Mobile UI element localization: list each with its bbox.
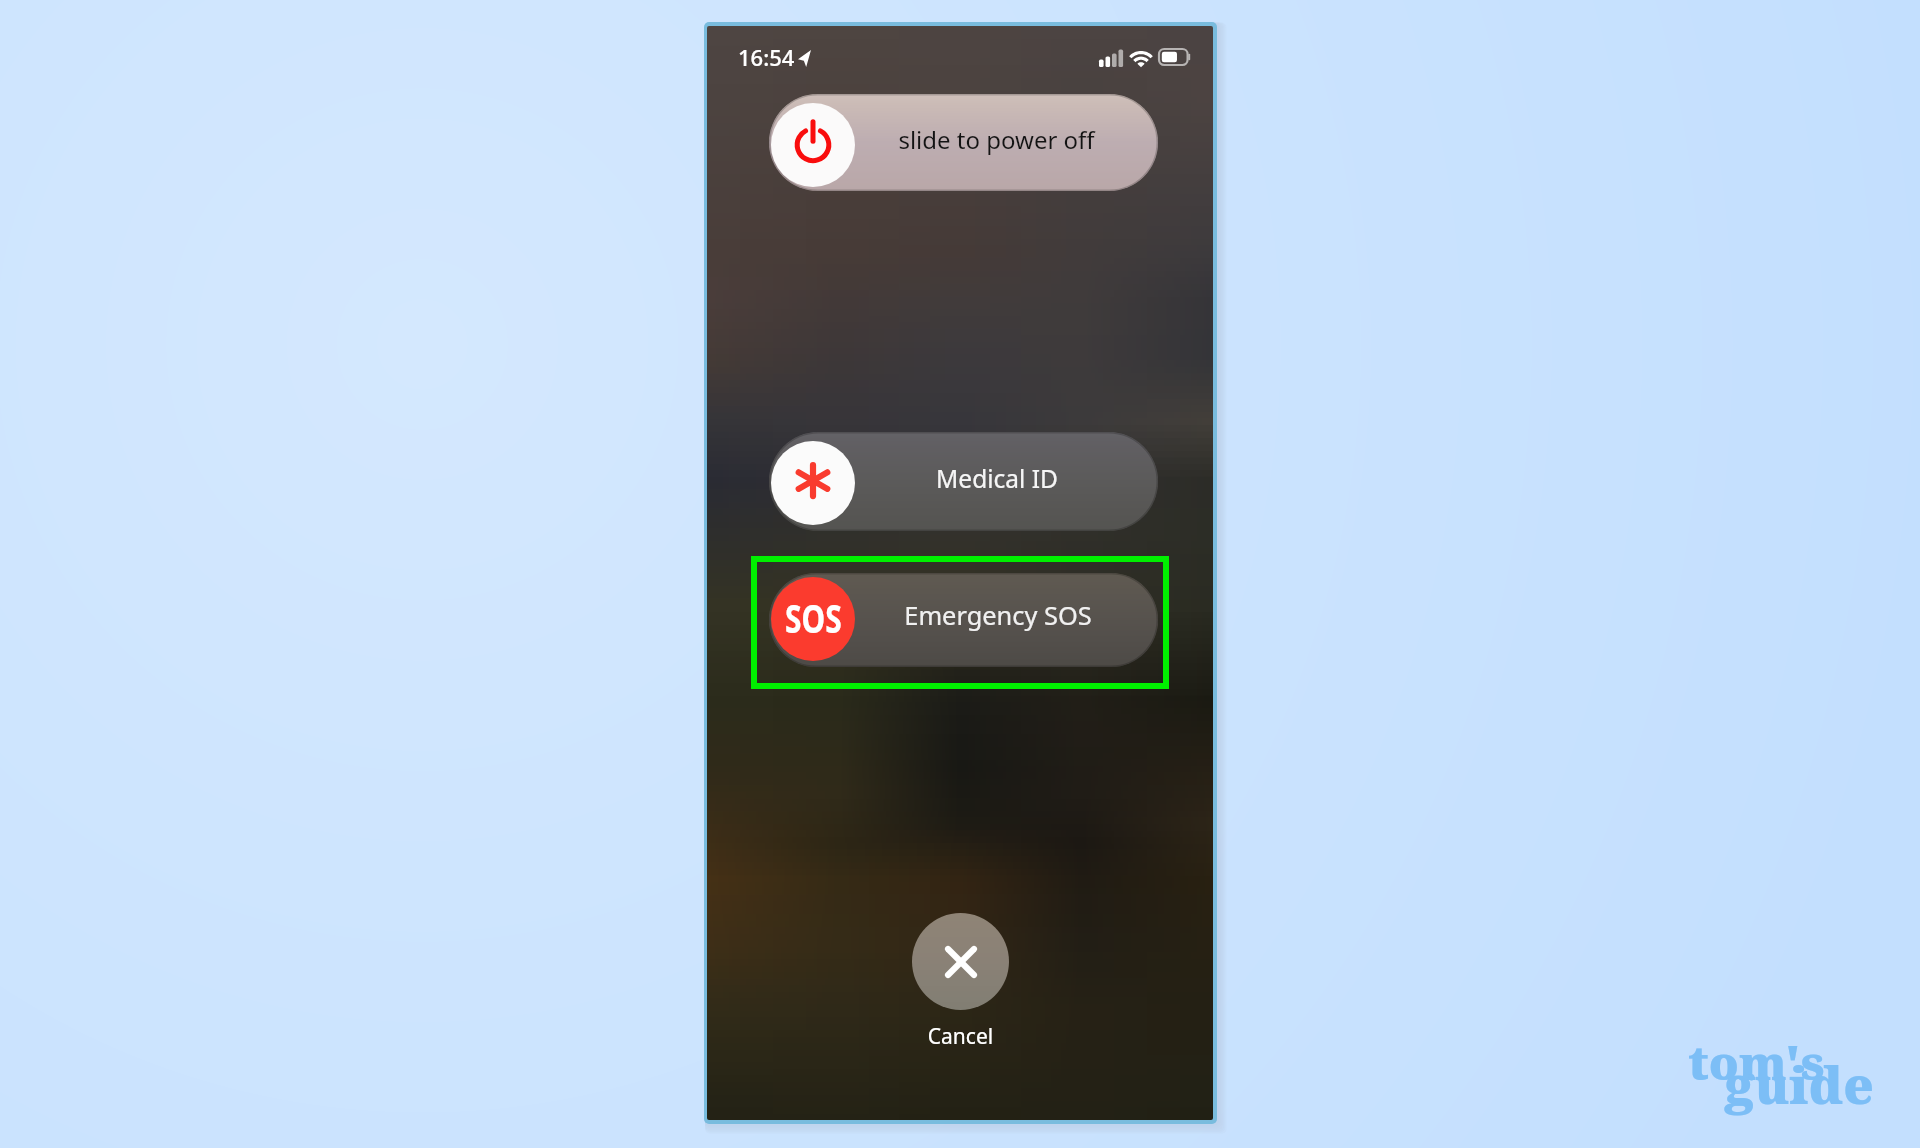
button[interactable]: Cancel: [912, 913, 1009, 1051]
staticText: 16:54: [738, 42, 795, 72]
button[interactable]: Medical ID: [769, 432, 1158, 531]
staticText: tom's: [1688, 1030, 1825, 1094]
staticText: SOS: [785, 591, 842, 645]
staticText: slide to power off: [898, 123, 1095, 156]
button[interactable]: Power off: [769, 94, 1158, 191]
staticText: guide: [1725, 1049, 1874, 1118]
staticText: Emergency SOS: [904, 598, 1092, 633]
staticText: Medical ID: [936, 462, 1058, 495]
button[interactable]: Power off: [771, 103, 855, 187]
button[interactable]: SOS: [769, 573, 1158, 667]
staticText: Cancel: [912, 1022, 1009, 1051]
other: Cancel: [912, 913, 1009, 1010]
button[interactable]: SOS: [771, 577, 855, 661]
button[interactable]: Medical ID: [771, 441, 855, 525]
